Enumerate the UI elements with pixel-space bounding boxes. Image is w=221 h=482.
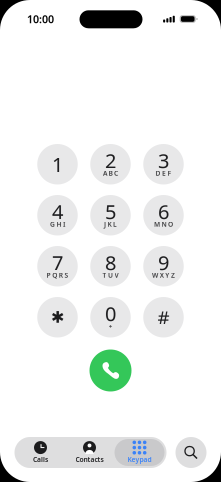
staticText: A [103,169,107,177]
staticText: Contacts [75,455,103,464]
staticText: Y [165,271,169,279]
staticText: N [161,220,166,228]
staticText: 3 [158,147,169,174]
staticText: Calls [33,455,48,464]
staticText: P [47,271,51,279]
button[interactable]: 1 [37,144,78,184]
button[interactable]: ✱ [37,297,78,337]
button[interactable]: Search [175,437,206,468]
staticText: W [152,271,158,279]
button[interactable]: 7 [37,246,78,286]
staticText: Q [52,271,57,279]
staticText: D [155,169,160,177]
button[interactable]: 3 [143,144,184,184]
staticText: K [107,220,111,228]
staticText: Z [171,271,175,279]
staticText: I [63,220,65,228]
staticText: ✱ [51,308,64,326]
staticText: + [108,322,112,330]
staticText: 9 [158,249,169,276]
staticText: X [160,271,164,279]
staticText: O [168,220,173,228]
staticText: 1 [52,151,63,178]
staticText: F [168,169,172,177]
staticText: M [154,220,160,228]
staticText: U [108,271,113,279]
button[interactable]: 5 [90,195,131,235]
staticText: 6 [158,198,169,225]
staticText: 2 [105,147,116,174]
button[interactable]: 2 [90,144,131,184]
button[interactable]: 9 [143,246,184,286]
staticText: 10:00 [27,12,54,26]
staticText: L [113,220,117,228]
staticText: # [157,305,169,330]
staticText: H [56,220,61,228]
staticText: T [102,271,106,279]
button[interactable]: # [143,297,184,337]
staticText: 8 [105,249,116,276]
staticText: 4 [52,198,63,225]
staticText: 0 [105,300,116,327]
staticText: 5 [105,198,116,225]
button[interactable]: 6 [143,195,184,235]
button[interactable]: Contacts [64,439,114,466]
staticText: Keypad [127,455,151,464]
staticText: C [114,169,118,177]
button[interactable]: 0 [90,297,131,337]
staticText: B [108,169,112,177]
staticText: G [50,220,55,228]
button[interactable]: Keypad [114,439,164,466]
button[interactable]: Calls [16,439,64,466]
staticText: E [162,169,166,177]
staticText: 7 [52,249,63,276]
button[interactable]: Call [89,349,131,391]
staticText: R [59,271,63,279]
staticText: J [104,220,106,228]
staticText: V [115,271,119,279]
button[interactable]: 4 [37,195,78,235]
button[interactable]: 8 [90,246,131,286]
staticText: S [64,271,68,279]
